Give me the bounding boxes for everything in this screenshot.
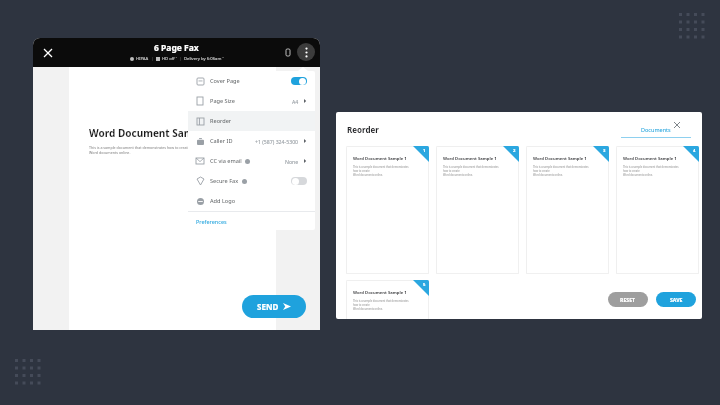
staticText: This is a sample document that demonstra… [533, 165, 593, 177]
staticText: Secure Fax [210, 177, 239, 185]
staticText: Word Document Sample 1 [443, 156, 497, 162]
staticText: HD off ˅ [162, 56, 177, 62]
button[interactable]: Documents [621, 126, 691, 138]
button[interactable]: Add Logo [188, 191, 315, 211]
staticText: Cover Page [210, 77, 240, 85]
staticText: Word Document Sample 1 [623, 156, 677, 162]
staticText: +1 (587) 324-5300 [255, 138, 299, 145]
staticText: Caller ID [210, 137, 233, 145]
button[interactable]: Word Document Sample 1 [526, 146, 609, 274]
button[interactable] [291, 77, 307, 85]
staticText: Add Logo [210, 197, 236, 205]
button[interactable]: Cover Page [188, 71, 315, 91]
button[interactable] [291, 177, 307, 185]
staticText: 6 Page Fax [154, 42, 199, 54]
staticText: Page Size [210, 97, 235, 105]
button[interactable]: Caller ID [188, 131, 315, 151]
staticText: This is a sample document that demonstra… [89, 145, 190, 155]
staticText: 4 [693, 148, 696, 154]
button[interactable]: Page Size [188, 91, 315, 111]
staticText: This is a sample document that demonstra… [443, 165, 503, 177]
staticText: Word Document Sample [89, 126, 209, 140]
button[interactable]: Secure Fax [188, 171, 315, 191]
staticText: Reorder [210, 117, 232, 125]
staticText: | [149, 56, 156, 62]
button[interactable]: Attachment [281, 45, 295, 59]
button[interactable]: Preferences [188, 212, 315, 230]
staticText: Word Document Sample 1 [533, 156, 587, 162]
staticText: Preferences [196, 218, 227, 225]
staticText: Word Document Sample 1 [353, 290, 407, 296]
staticText: Reorder [347, 124, 379, 135]
staticText: 1 [423, 148, 426, 154]
button[interactable]: Word Document Sample 1 [616, 146, 699, 274]
staticText: Delivery by 6:06am ˅ [184, 56, 224, 62]
button[interactable]: Word Document Sample 1 [436, 146, 519, 274]
staticText: 5 [423, 282, 426, 288]
staticText: A4 [292, 98, 299, 105]
staticText: SEND [257, 301, 279, 312]
button[interactable]: Word Document Sample 1 [346, 146, 429, 274]
button[interactable]: Close [40, 45, 56, 61]
button[interactable]: CC via email [188, 151, 315, 171]
staticText: This is a sample document that demonstra… [353, 299, 413, 311]
button[interactable]: Reorder [188, 111, 315, 131]
staticText: SAVE [670, 296, 683, 303]
button[interactable]: SEND [242, 295, 306, 318]
button[interactable]: Word Document Sample 1 [346, 280, 429, 319]
staticText: | [177, 56, 184, 62]
button[interactable]: RESET [608, 292, 648, 307]
staticText: 3 [603, 148, 606, 154]
staticText: HIPAA [136, 56, 149, 62]
button[interactable]: SAVE [656, 292, 696, 307]
staticText: CC via email [210, 157, 242, 165]
staticText: 2 [513, 148, 516, 154]
staticText: This is a sample document that demonstra… [623, 165, 683, 177]
button[interactable]: More options [297, 43, 315, 61]
staticText: Documents [641, 126, 671, 133]
staticText: Word Document Sample 1 [353, 156, 407, 162]
button[interactable]: Close [670, 118, 684, 132]
staticText: None [285, 158, 299, 165]
staticText: This is a sample document that demonstra… [353, 165, 413, 177]
staticText: RESET [620, 296, 636, 303]
